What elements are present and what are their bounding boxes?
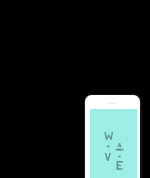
button[interactable]: Phone mockup showing the Wave app bbox=[85, 95, 140, 178]
